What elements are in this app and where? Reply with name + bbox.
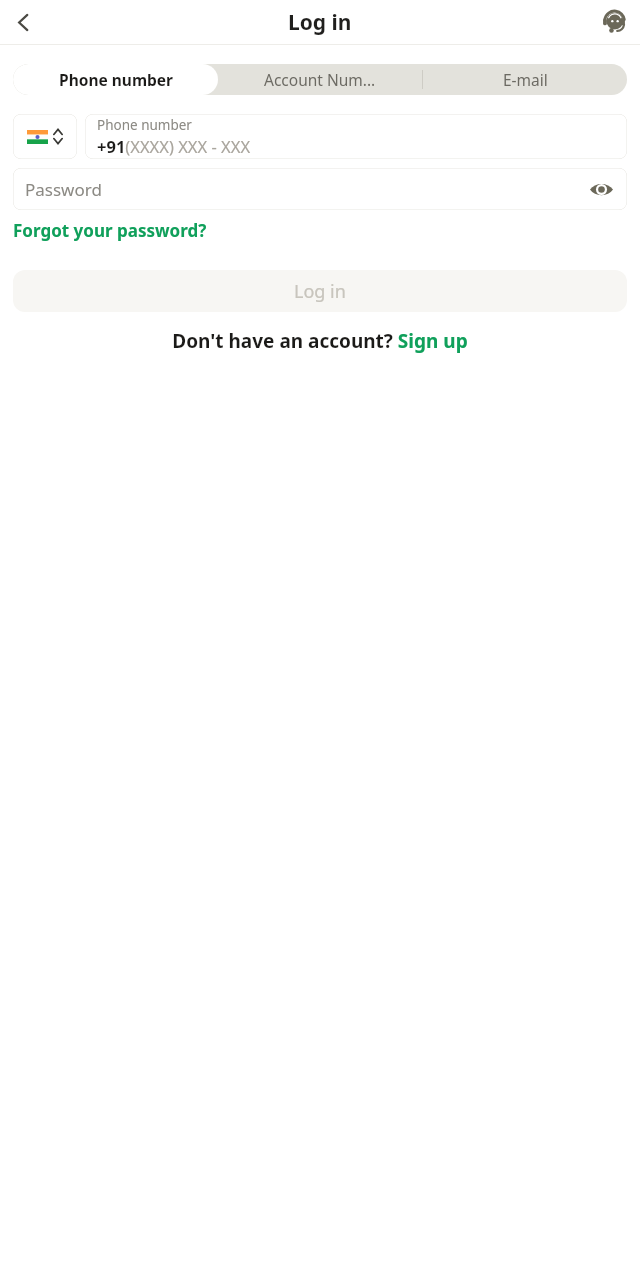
- staticText: +91(XXXX) XXX - XXX: [97, 135, 251, 157]
- staticText: Password: [25, 178, 102, 201]
- staticText: Forgot your password?: [13, 219, 207, 242]
- staticText: Phone number: [59, 69, 173, 90]
- button[interactable]: Show password: [585, 173, 617, 205]
- button[interactable]: Select country code: [13, 114, 77, 159]
- button[interactable]: Account Num...: [218, 64, 422, 95]
- button[interactable]: Log in: [13, 270, 627, 312]
- button[interactable]: Back: [4, 3, 42, 41]
- button[interactable]: Don't have an account? Sign up: [164, 326, 476, 356]
- staticText: E-mail: [503, 69, 548, 90]
- button[interactable]: Customer support: [594, 2, 634, 42]
- staticText: Account Num...: [264, 69, 376, 90]
- staticText: Log in: [294, 279, 346, 304]
- button[interactable]: Phone number: [85, 114, 627, 159]
- button[interactable]: E-mail: [423, 64, 627, 95]
- staticText: Log in: [288, 8, 352, 37]
- button[interactable]: Phone number: [13, 64, 218, 95]
- staticText: Phone number: [97, 116, 192, 134]
- button[interactable]: Forgot your password?: [13, 216, 207, 245]
- button[interactable]: Password: [13, 168, 627, 210]
